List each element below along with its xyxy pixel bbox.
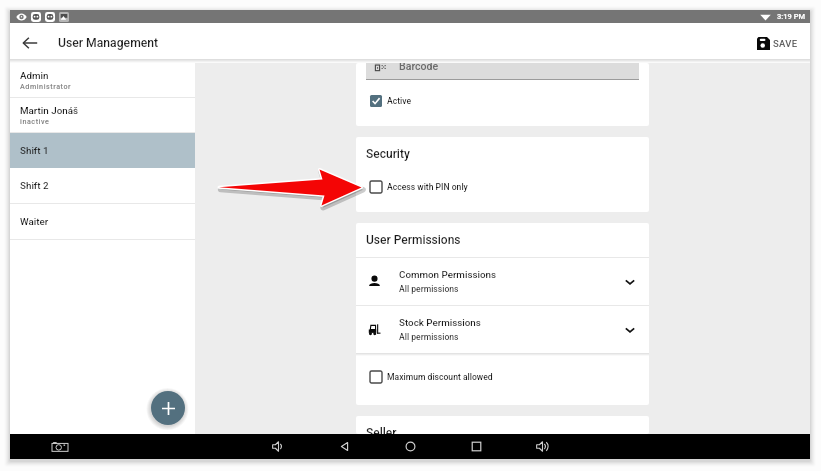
- button[interactable]: Home: [398, 434, 423, 459]
- button[interactable]: Add user: [151, 391, 185, 425]
- staticText: Barcode: [399, 63, 439, 72]
- staticText: Shift 2: [20, 180, 49, 191]
- button[interactable]: Shift 1: [10, 133, 195, 168]
- button[interactable]: Screenshot: [47, 434, 72, 459]
- staticText: User Permissions: [366, 233, 461, 247]
- staticText: User Management: [58, 36, 159, 50]
- staticText: All permissions: [399, 284, 459, 294]
- button[interactable]: Back: [10, 23, 50, 63]
- button[interactable]: Volume up: [530, 434, 555, 459]
- staticText: Maximum discount allowed: [387, 372, 493, 382]
- button[interactable]: Admin: [10, 63, 195, 97]
- staticText: Martin Jonáš: [20, 105, 78, 116]
- button[interactable]: SAVE: [745, 23, 810, 63]
- staticText: Security: [366, 147, 410, 161]
- staticText: Shift 1: [20, 145, 49, 156]
- button[interactable]: Common Permissions: [356, 258, 649, 305]
- staticText: Admin: [20, 70, 49, 81]
- button[interactable]: Volume down: [266, 434, 291, 459]
- staticText: Access with PIN only: [387, 182, 468, 192]
- staticText: 3:19 PM: [777, 12, 805, 21]
- staticText: Administrator: [20, 82, 72, 90]
- staticText: Active: [387, 96, 412, 106]
- button[interactable]: Maximum discount allowed: [370, 371, 493, 383]
- staticText: All permissions: [399, 332, 459, 342]
- button[interactable]: Waiter: [10, 204, 195, 239]
- staticText: inactive: [20, 117, 50, 125]
- button[interactable]: Back: [332, 434, 357, 459]
- staticText: Waiter: [20, 216, 49, 227]
- staticText: Stock Permissions: [399, 317, 481, 328]
- button[interactable]: Recents: [464, 434, 489, 459]
- staticText: Common Permissions: [399, 269, 497, 280]
- button[interactable]: Active: [370, 95, 412, 107]
- button[interactable]: Access with PIN only: [370, 181, 468, 193]
- staticText: Seller: [366, 426, 397, 434]
- button[interactable]: Stock Permissions: [356, 306, 649, 353]
- staticText: SAVE: [773, 38, 798, 49]
- button[interactable]: Shift 2: [10, 168, 195, 203]
- button[interactable]: Martin Jonáš: [10, 98, 195, 132]
